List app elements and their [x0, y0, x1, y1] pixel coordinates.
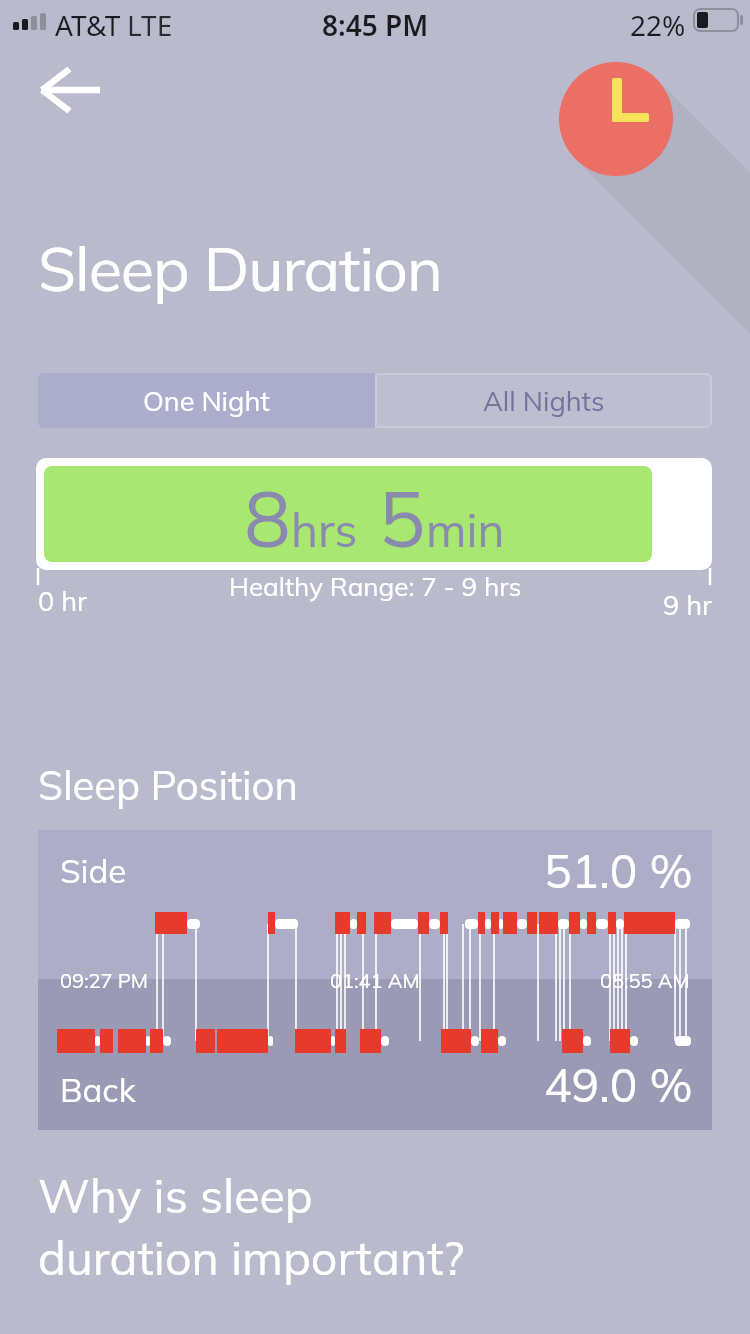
staticText: 51.0 %: [544, 842, 693, 900]
staticText: LTE: [127, 6, 173, 44]
staticText: 5: [358, 469, 426, 567]
staticText: 9 hr: [663, 588, 712, 622]
staticText: 49.0 %: [544, 1056, 693, 1114]
staticText: Sleep Position: [38, 760, 298, 810]
staticText: One Night: [143, 384, 270, 418]
staticText: 0 hr: [38, 584, 87, 618]
staticText: Side: [60, 850, 127, 891]
staticText: hrs: [291, 501, 358, 559]
staticText: 01:41 AM: [330, 968, 420, 993]
button[interactable]: [559, 62, 673, 176]
staticText: Healthy Range: 7 - 9 hrs: [229, 570, 522, 603]
staticText: Back: [60, 1069, 136, 1110]
staticText: 09:27 PM: [60, 968, 149, 993]
staticText: All Nights: [483, 384, 605, 418]
staticText: 8: [244, 469, 291, 567]
button[interactable]: All Nights: [375, 373, 712, 428]
button[interactable]: One Night: [38, 373, 375, 428]
staticText: 05:55 AM: [600, 968, 690, 993]
staticText: Sleep Duration: [38, 230, 442, 307]
staticText: Why is sleep duration important?: [38, 1166, 465, 1286]
staticText: 22%: [630, 6, 686, 44]
staticText: 8:45 PM: [322, 6, 429, 44]
staticText: AT&T: [55, 6, 121, 44]
staticText: min: [426, 501, 505, 559]
button[interactable]: [28, 56, 112, 122]
